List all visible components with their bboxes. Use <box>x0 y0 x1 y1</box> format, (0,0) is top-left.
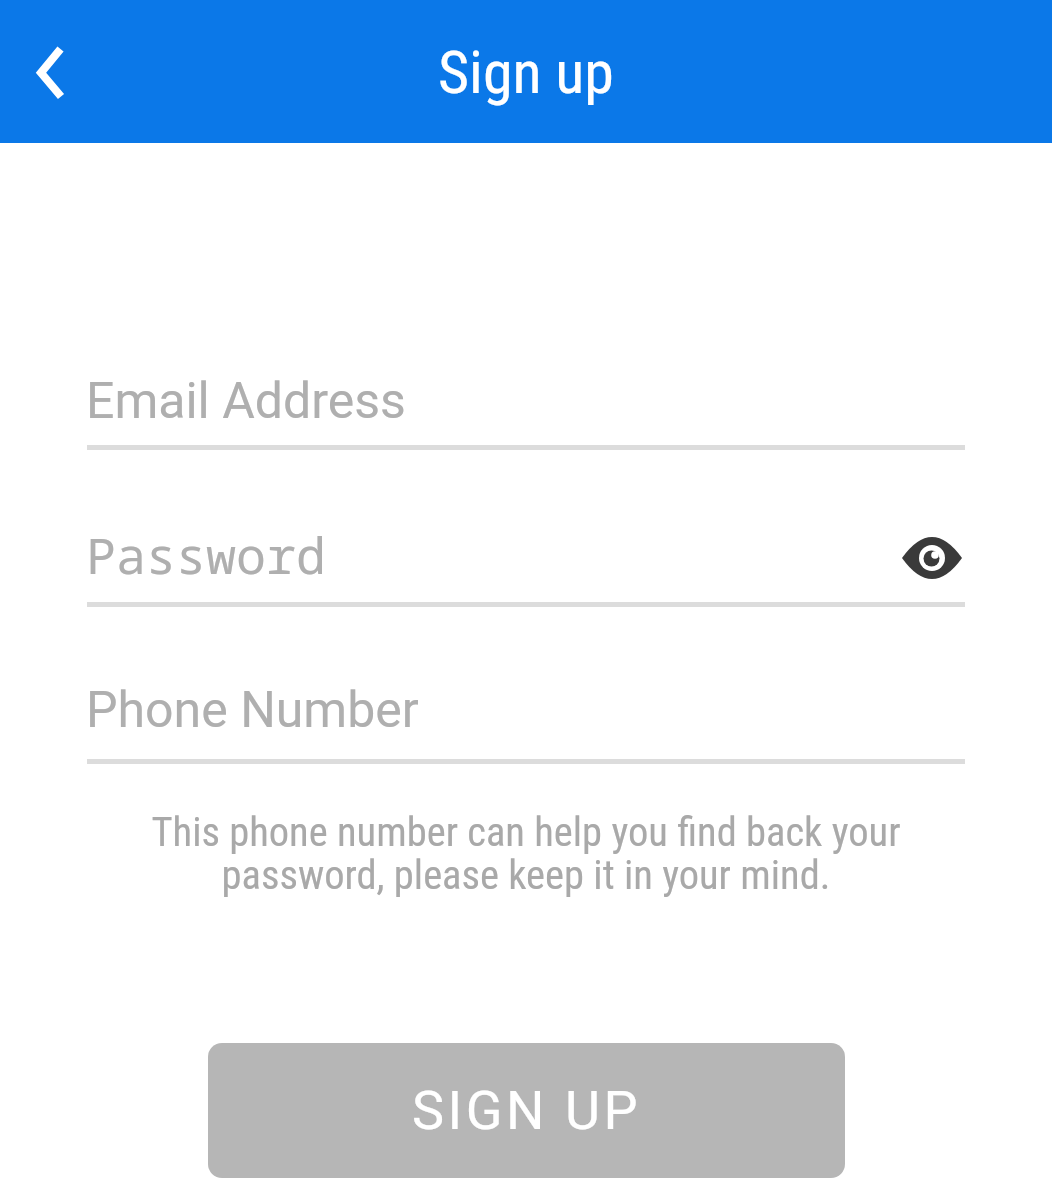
staticText: Password <box>86 521 326 589</box>
staticText: SIGN UP <box>412 1079 642 1142</box>
button[interactable] <box>4 27 96 119</box>
staticText: Phone Number <box>86 681 419 740</box>
button[interactable]: Phone Number <box>86 674 965 764</box>
button[interactable]: SIGN UP <box>208 1043 845 1178</box>
button[interactable]: Password <box>86 510 965 607</box>
staticText: This phone number can help you find back… <box>0 808 1052 899</box>
staticText: Sign up <box>438 37 614 107</box>
button[interactable] <box>896 520 968 596</box>
button[interactable]: Email Address <box>86 365 965 450</box>
staticText: Email Address <box>86 372 406 431</box>
